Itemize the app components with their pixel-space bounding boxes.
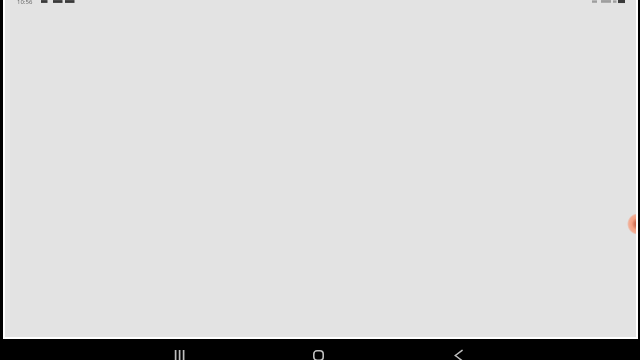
button[interactable]: Back bbox=[388, 339, 527, 360]
staticText: 10:56 bbox=[17, 0, 33, 6]
button[interactable]: Home bbox=[249, 339, 388, 360]
button[interactable]: Add bbox=[627, 213, 636, 235]
button[interactable]: Recents bbox=[110, 339, 249, 360]
